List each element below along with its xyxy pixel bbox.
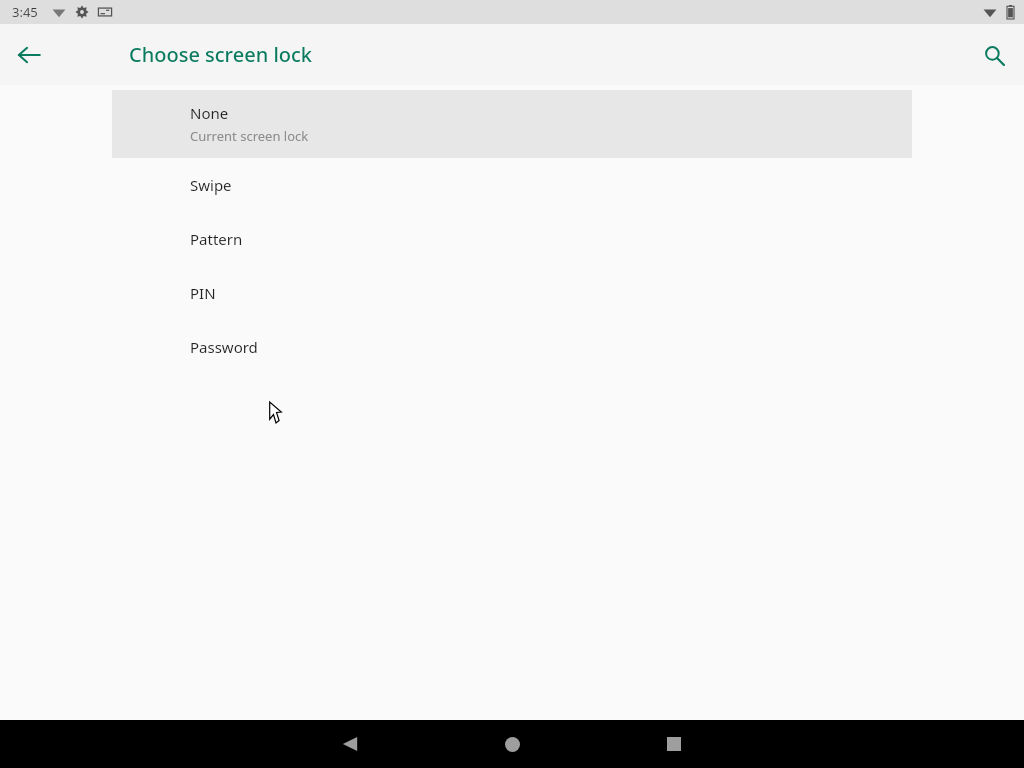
button[interactable]: Search — [971, 32, 1017, 78]
button[interactable]: Recents — [650, 720, 698, 768]
button[interactable]: Pattern — [112, 212, 912, 266]
staticText: None — [190, 103, 229, 123]
button[interactable]: Password — [112, 320, 912, 374]
staticText: Current screen lock — [190, 127, 309, 145]
staticText: Swipe — [190, 175, 232, 195]
staticText: 3:45 — [12, 3, 38, 21]
staticText: Password — [190, 337, 258, 357]
button[interactable]: None — [112, 90, 912, 158]
button[interactable]: PIN — [112, 266, 912, 320]
staticText: Choose screen lock — [129, 41, 312, 68]
staticText: Pattern — [190, 229, 243, 249]
button[interactable]: Home — [488, 720, 536, 768]
button[interactable]: Back — [6, 32, 52, 78]
staticText: PIN — [190, 283, 216, 303]
button[interactable]: Back — [326, 720, 374, 768]
button[interactable]: Swipe — [112, 158, 912, 212]
